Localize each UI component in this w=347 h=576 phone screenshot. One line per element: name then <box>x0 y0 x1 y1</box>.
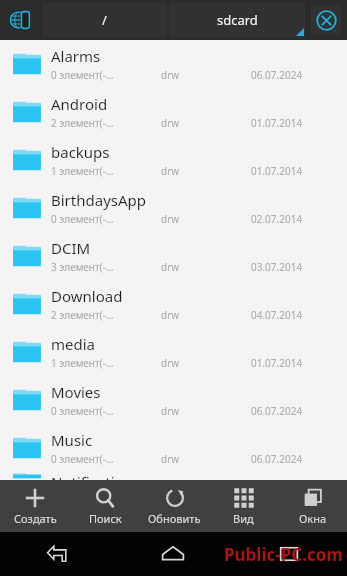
button[interactable]: Notifications <box>0 472 347 480</box>
staticText: sdcard <box>217 11 258 29</box>
staticText: drw <box>161 164 251 178</box>
staticText: 1 элемент(-… <box>51 164 161 178</box>
staticText: 1 элемент(-… <box>51 356 161 370</box>
button[interactable]: sdcard <box>169 3 305 37</box>
staticText: 06.07.2024 <box>251 404 303 418</box>
staticText: drw <box>161 356 251 370</box>
button[interactable]: Android <box>0 88 347 136</box>
button[interactable]: Storage <box>3 2 39 38</box>
staticText: 02.07.2014 <box>251 212 303 226</box>
button[interactable]: BirthdaysApp <box>0 184 347 232</box>
button[interactable]: Music <box>0 424 347 472</box>
staticText: drw <box>161 68 251 82</box>
staticText: Public-PC.com <box>224 543 343 566</box>
staticText: Вид <box>233 511 254 526</box>
staticText: BirthdaysApp <box>51 190 147 210</box>
staticText: Создать <box>14 511 57 526</box>
staticText: 01.07.2014 <box>251 116 303 130</box>
button[interactable]: media <box>0 328 347 376</box>
staticText: Alarms <box>51 46 101 66</box>
button[interactable]: Обновить <box>140 480 209 532</box>
staticText: drw <box>161 308 251 322</box>
staticText: / <box>102 11 107 29</box>
staticText: drw <box>161 452 251 466</box>
staticText: backups <box>51 142 110 162</box>
staticText: drw <box>161 116 251 130</box>
button[interactable]: Создать <box>0 480 70 532</box>
button[interactable]: Back <box>0 532 115 576</box>
staticText: 0 элемент(-… <box>51 404 161 418</box>
button[interactable]: / <box>42 3 167 37</box>
staticText: 03.07.2014 <box>251 260 303 274</box>
staticText: 06.07.2024 <box>251 68 303 82</box>
staticText: media <box>51 334 95 354</box>
button[interactable]: Окна <box>278 480 347 532</box>
staticText: 2 элемент(-… <box>51 308 161 322</box>
button[interactable]: Recent apps <box>231 532 347 576</box>
staticText: Notifications <box>51 472 141 480</box>
staticText: 3 элемент(-… <box>51 260 161 274</box>
staticText: Обновить <box>148 511 201 526</box>
button[interactable]: backups <box>0 136 347 184</box>
button[interactable]: Home <box>115 532 231 576</box>
staticText: Окна <box>299 511 327 526</box>
button[interactable]: Alarms <box>0 40 347 88</box>
staticText: 01.07.2014 <box>251 356 303 370</box>
staticText: Поиск <box>89 511 122 526</box>
button[interactable]: DCIM <box>0 232 347 280</box>
button[interactable]: Вид <box>209 480 278 532</box>
button[interactable]: Close <box>308 2 344 38</box>
staticText: Music <box>51 430 93 450</box>
staticText: drw <box>161 404 251 418</box>
staticText: drw <box>161 212 251 226</box>
staticText: 0 элемент(-… <box>51 452 161 466</box>
staticText: Movies <box>51 382 101 402</box>
staticText: Download <box>51 286 123 306</box>
button[interactable]: Поиск <box>70 480 140 532</box>
staticText: Android <box>51 94 108 114</box>
staticText: DCIM <box>51 238 91 258</box>
staticText: 04.07.2014 <box>251 308 303 322</box>
button[interactable]: Movies <box>0 376 347 424</box>
staticText: 0 элемент(-… <box>51 68 161 82</box>
staticText: 0 элемент(-… <box>51 212 161 226</box>
staticText: 01.07.2014 <box>251 164 303 178</box>
staticText: drw <box>161 260 251 274</box>
button[interactable]: Download <box>0 280 347 328</box>
staticText: 2 элемент(-… <box>51 116 161 130</box>
staticText: 06.07.2024 <box>251 452 303 466</box>
